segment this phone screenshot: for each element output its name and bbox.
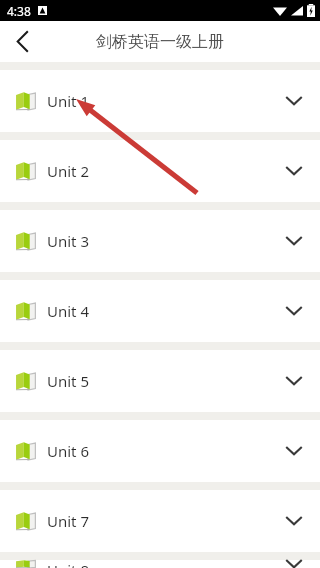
staticText: Unit 4 (47, 301, 90, 321)
staticText: Unit 5 (47, 371, 90, 391)
button[interactable]: Unit 3 (0, 210, 320, 272)
staticText: Unit 7 (47, 511, 90, 531)
button[interactable]: Unit 5 (0, 350, 320, 412)
button[interactable]: Unit 2 (0, 140, 320, 202)
staticText: Unit 6 (47, 441, 90, 461)
button[interactable]: Unit 4 (0, 280, 320, 342)
button[interactable]: Unit 1 (0, 70, 320, 132)
staticText: Unit 8 (47, 560, 90, 568)
button[interactable]: Unit 8 (0, 560, 320, 568)
staticText: 4:38 (7, 3, 31, 19)
staticText: Unit 3 (47, 231, 90, 251)
staticText: 剑桥英语一级上册 (96, 32, 224, 52)
button[interactable]: Unit 6 (0, 420, 320, 482)
staticText: Unit 2 (47, 161, 90, 181)
staticText: Unit 1 (47, 91, 90, 111)
button[interactable]: Unit 7 (0, 490, 320, 552)
button[interactable]: Back (0, 21, 44, 62)
